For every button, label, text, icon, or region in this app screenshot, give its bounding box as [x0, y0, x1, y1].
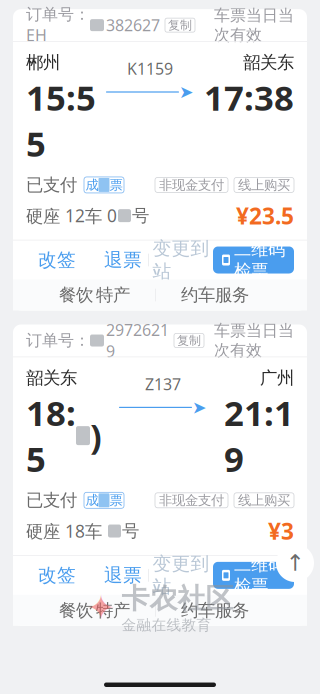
staticText: 票 — [109, 177, 122, 193]
staticText: ➤ — [179, 82, 194, 102]
staticText: 郴州 — [26, 52, 60, 73]
staticText: 已支付 — [26, 490, 77, 511]
staticText: ¥23.5 — [236, 201, 294, 231]
staticText: 特产 — [96, 600, 130, 621]
staticText: 硬座 18车 — [26, 519, 107, 542]
button[interactable]: 改签 — [26, 241, 88, 279]
staticText: ➤ — [192, 397, 207, 417]
staticText: 复制 — [177, 333, 201, 348]
staticText: 18:5 — [26, 390, 76, 482]
staticText: 订单号： — [26, 331, 90, 350]
staticText: 约车服务 — [181, 284, 249, 306]
staticText: 卡农社区 — [121, 582, 233, 616]
staticText: 韶关东 — [26, 367, 77, 389]
staticText: 17:38 — [204, 74, 294, 120]
staticText: 号 — [122, 520, 139, 542]
button[interactable]: 二维码检票 — [213, 562, 294, 589]
button[interactable]: 变更到站 — [149, 556, 213, 594]
staticText: 二维码检票 — [234, 239, 285, 281]
staticText: 15:55 — [26, 74, 96, 166]
staticText: 21:19 — [224, 390, 294, 482]
staticText: 退票 — [104, 248, 142, 271]
button[interactable]: 改签 — [26, 556, 88, 594]
staticText: 约车服务 — [181, 600, 249, 621]
button[interactable]: 复制 — [165, 18, 195, 32]
staticText: Z137 — [145, 373, 181, 394]
staticText: 车票当日当次有效 — [214, 321, 294, 360]
staticText: 29726219 — [106, 319, 169, 362]
button[interactable]: 餐饮 — [59, 280, 130, 310]
staticText: 改签 — [38, 564, 76, 587]
staticText: 金融在线教育 — [121, 616, 211, 634]
staticText: 382627 — [106, 14, 160, 36]
staticText: ¥3 — [268, 516, 294, 546]
staticText: 广州 — [260, 367, 294, 389]
staticText: 成 — [85, 177, 98, 193]
staticText: 特产 — [96, 284, 130, 306]
button[interactable]: 复制 — [174, 333, 204, 347]
staticText: 变更到站 — [152, 237, 209, 283]
staticText: 餐饮 — [59, 284, 93, 306]
staticText: ) — [90, 413, 102, 459]
staticText: 韶关东 — [243, 52, 294, 73]
staticText: 非现金支付 — [159, 492, 224, 508]
staticText: ✦ — [86, 588, 115, 627]
staticText: 变更到站 — [152, 552, 209, 598]
staticText: 复制 — [168, 18, 192, 32]
button[interactable]: 约车服务 — [181, 280, 249, 310]
staticText: 餐饮 — [59, 600, 93, 621]
button[interactable]: 退票 — [98, 241, 148, 279]
staticText: 二维码检票 — [234, 554, 285, 597]
staticText: 已支付 — [26, 174, 77, 196]
button[interactable]: 变更到站 — [149, 241, 213, 279]
staticText: 改签 — [38, 248, 76, 271]
staticText: 号 — [132, 205, 149, 226]
staticText: 硬座 12车 0 — [26, 204, 117, 227]
staticText: 线上购买 — [238, 177, 290, 193]
button[interactable]: 餐饮 — [59, 595, 130, 625]
staticText: 车票当日当次有效 — [214, 5, 294, 45]
button[interactable]: 二维码检票 — [213, 246, 294, 273]
staticText: K1159 — [127, 58, 173, 79]
staticText: ↑ — [285, 550, 304, 576]
button[interactable]: 回到顶部 — [276, 544, 314, 582]
staticText: 非现金支付 — [159, 177, 224, 193]
staticText: 线上购买 — [238, 492, 290, 508]
button[interactable]: 退票 — [98, 556, 148, 594]
staticText: 退票 — [104, 564, 142, 587]
staticText: 票 — [109, 492, 122, 508]
staticText: 订单号：EH — [26, 5, 90, 46]
staticText: 成 — [85, 492, 98, 508]
button[interactable]: 约车服务 — [181, 595, 249, 625]
